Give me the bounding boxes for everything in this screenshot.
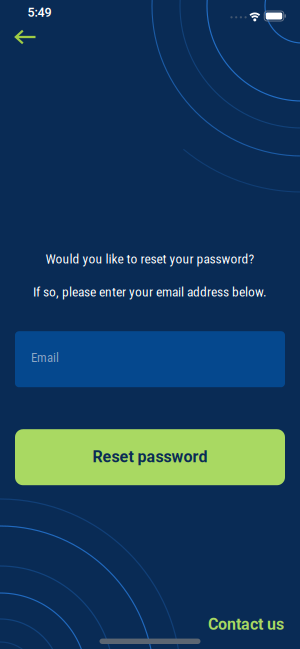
button[interactable]: Reset password xyxy=(15,429,285,485)
staticText: 5:49 xyxy=(27,5,51,20)
staticText: Email xyxy=(31,350,59,365)
button[interactable]: Contact us xyxy=(208,615,284,634)
staticText: Would you like to reset your password? xyxy=(45,251,254,267)
button[interactable]: Email xyxy=(15,331,285,387)
staticText: Contact us xyxy=(208,615,284,634)
button[interactable] xyxy=(3,24,47,50)
staticText: If so, please enter your email address b… xyxy=(33,284,267,300)
staticText: Reset password xyxy=(92,447,207,466)
